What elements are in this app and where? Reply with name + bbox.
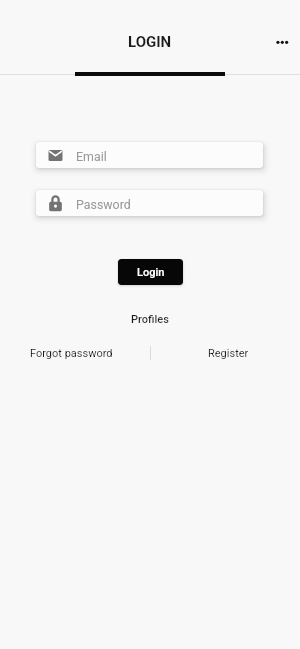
staticText: Profiles [131,313,169,326]
staticText: LOGIN [128,33,172,51]
staticText: Password [76,197,131,212]
staticText: Register [208,347,249,360]
button[interactable]: Profiles [123,309,177,330]
staticText: Email [76,149,107,164]
staticText: Login [137,266,165,279]
button[interactable]: Forgot password [0,344,143,362]
button[interactable]: Register [157,344,300,362]
staticText: Forgot password [30,347,113,360]
button[interactable]: Password [36,190,263,216]
button[interactable]: More options [262,22,300,62]
button[interactable]: Login [118,259,183,285]
button[interactable]: Email [36,142,263,168]
